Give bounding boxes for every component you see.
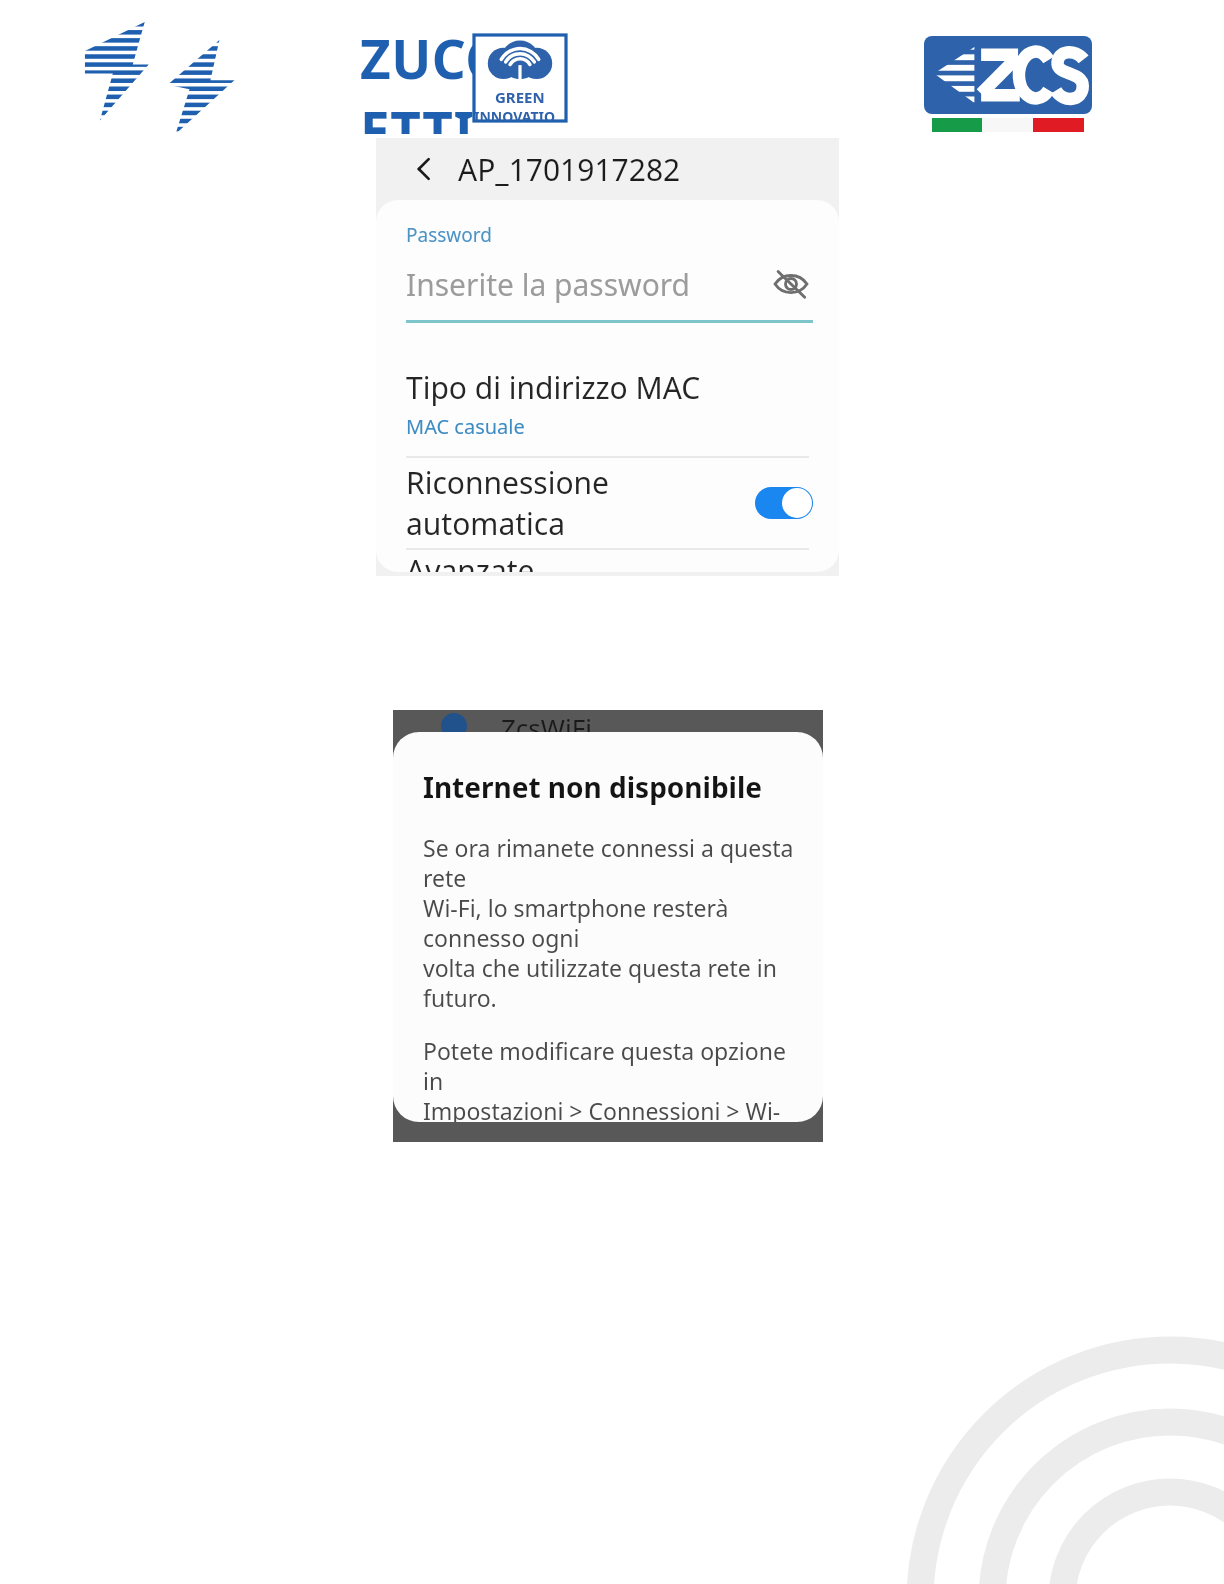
button[interactable]: Avanzate — [376, 550, 839, 572]
staticText: ZcsWiFi — [501, 710, 592, 742]
staticText: Tipo di indirizzo MAC — [406, 367, 701, 408]
staticText: Avanzate — [406, 550, 535, 572]
button[interactable]: Riconnessione automatica — [376, 458, 839, 548]
button[interactable]: Password — [376, 200, 839, 323]
staticText: Inserite la password — [406, 264, 769, 305]
staticText: Se ora rimanete connessi a questa rete W… — [423, 832, 797, 1013]
button[interactable]: Tipo di indirizzo MAC — [376, 367, 839, 456]
staticText: Riconnessione automatica — [406, 462, 755, 544]
staticText: Internet non disponibile — [423, 768, 763, 806]
staticText: AP_1701917282 — [458, 149, 681, 190]
staticText: MAC casuale — [406, 413, 525, 440]
staticText: Password — [406, 222, 492, 248]
staticText: GREEN — [495, 87, 545, 107]
staticText: ZUCCHETTI — [360, 22, 568, 134]
staticText: Potete modificare questa opzione in Impo… — [423, 1035, 797, 1122]
button[interactable]: Show password — [769, 262, 813, 306]
staticText: INNOVATION — [474, 107, 566, 121]
button[interactable]: Back — [404, 149, 444, 189]
